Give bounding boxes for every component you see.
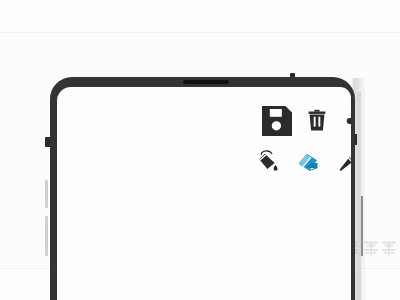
button[interactable]: Fill xyxy=(253,148,283,176)
button[interactable]: Share xyxy=(341,107,351,135)
button[interactable]: Delete xyxy=(302,107,332,135)
button[interactable]: Color picker xyxy=(333,148,351,176)
button[interactable]: Save xyxy=(262,107,292,135)
button[interactable]: Eraser xyxy=(293,148,323,176)
